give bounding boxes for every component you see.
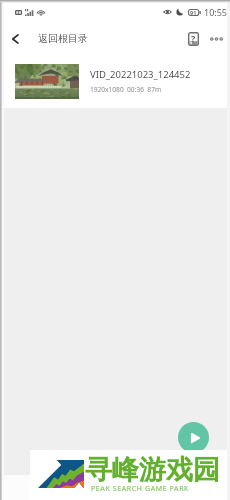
button[interactable]: More options [205, 28, 227, 50]
staticText: 寻峰游戏园 [85, 453, 220, 487]
button[interactable]: Help [182, 28, 204, 50]
button[interactable]: Play [178, 422, 209, 453]
staticText: 返回根目录 [38, 32, 88, 45]
button[interactable]: VID_20221023_124452 [0, 55, 230, 108]
button[interactable]: 寻峰游戏园 [30, 450, 230, 500]
button[interactable]: Back [4, 28, 26, 50]
staticText: VID_20221023_124452 [90, 68, 191, 81]
staticText: ? [191, 32, 196, 44]
staticText: 10:55 [204, 6, 228, 18]
staticText: 1920x1080 00:36 87m [90, 85, 162, 94]
staticText: PEAK SEARCH GAME PARK [91, 484, 190, 494]
staticText: 91 [190, 9, 197, 16]
